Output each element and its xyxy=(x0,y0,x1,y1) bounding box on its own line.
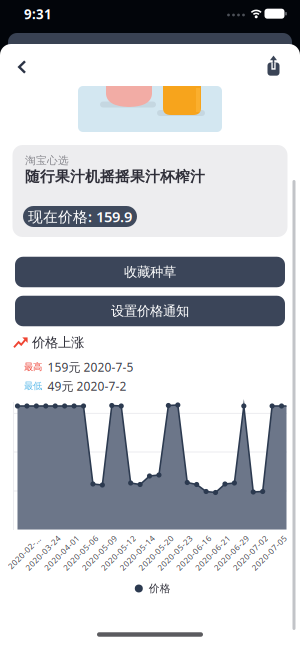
staticText: 2020-05-20 xyxy=(133,547,179,558)
staticText: 最低 xyxy=(24,380,42,392)
staticText: 随行果汁机摇摇果汁杯榨汁 xyxy=(25,167,205,185)
staticText: 2020-06-21 xyxy=(190,547,236,558)
staticText: 49元 2020-7-2 xyxy=(47,378,126,394)
button[interactable]: 设置价格通知 xyxy=(15,296,285,326)
button[interactable]: Share xyxy=(258,50,288,82)
staticText: 现在价格: 159.9 xyxy=(28,207,132,226)
staticText: 2020-06-29 xyxy=(209,547,255,558)
staticText: 2020-07-02 xyxy=(227,547,273,558)
staticText: 2020-03-24 xyxy=(20,547,66,558)
staticText: 9:31 xyxy=(24,5,52,23)
staticText: 最高 xyxy=(24,361,42,373)
staticText: 淘宝心选 xyxy=(25,154,69,167)
staticText: 2020-04-01 xyxy=(39,547,85,558)
staticText: 2020-05-12 xyxy=(95,547,141,558)
staticText: 2020-06-16 xyxy=(171,547,217,558)
staticText: 设置价格通知 xyxy=(111,303,189,319)
staticText: 2020-02-… xyxy=(3,547,45,558)
staticText: 2020-05-23 xyxy=(152,547,198,558)
button[interactable]: 收藏种草 xyxy=(15,257,285,287)
staticText: 159元 2020-7-5 xyxy=(47,359,133,375)
staticText: 收藏种草 xyxy=(124,264,176,280)
button[interactable]: Back xyxy=(8,52,36,82)
staticText: 2020-07-05 xyxy=(246,547,292,558)
staticText: 价格上涨 xyxy=(32,334,84,351)
staticText: 2020-05-06 xyxy=(58,547,104,558)
staticText: 价格 xyxy=(149,582,171,595)
staticText: 2020-05-14 xyxy=(114,547,160,558)
staticText: 2020-05-09 xyxy=(77,547,123,558)
